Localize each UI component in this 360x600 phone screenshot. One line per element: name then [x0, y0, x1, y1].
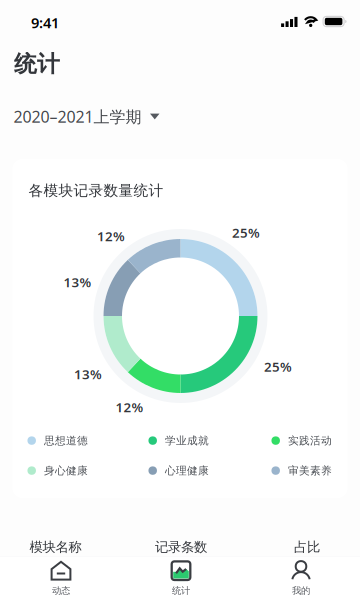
staticText: 记录条数: [155, 539, 207, 555]
staticText: 13%: [74, 365, 102, 383]
staticText: 占比: [294, 539, 320, 555]
staticText: 9:41: [31, 13, 59, 32]
staticText: 13%: [63, 273, 91, 291]
staticText: 身心健康: [44, 464, 88, 477]
staticText: 各模块记录数量统计: [28, 181, 163, 199]
staticText: 2020–2021上学期: [13, 106, 141, 127]
staticText: 心理健康: [165, 464, 209, 477]
staticText: 思想道德: [44, 434, 88, 447]
staticText: 实践活动: [288, 434, 332, 447]
staticText: 12%: [115, 398, 143, 416]
staticText: 统计: [172, 585, 190, 596]
staticText: 我的: [292, 585, 310, 596]
staticText: 25%: [264, 358, 292, 375]
staticText: 审美素养: [288, 464, 332, 477]
button[interactable]: 我的: [240, 556, 360, 600]
button[interactable]: 动态: [0, 556, 120, 600]
staticText: 学业成就: [165, 434, 209, 447]
staticText: 25%: [232, 224, 260, 241]
staticText: 动态: [52, 585, 70, 596]
staticText: 模块名称: [29, 539, 81, 555]
button[interactable]: 2020–2021上学期: [9, 99, 163, 134]
button[interactable]: 统计: [120, 556, 240, 600]
staticText: 统计: [14, 50, 60, 78]
staticText: 12%: [97, 227, 125, 245]
